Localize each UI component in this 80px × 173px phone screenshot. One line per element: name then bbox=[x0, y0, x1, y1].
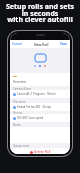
button[interactable]: Save bbox=[60, 42, 68, 46]
button[interactable]: Kodak Portra 400 · 36 exp bbox=[13, 103, 68, 111]
button[interactable]: Cancel bbox=[12, 42, 22, 46]
staticText: Cancel bbox=[12, 42, 22, 46]
staticText: Camera & lens bbox=[13, 87, 32, 91]
staticText: Shot at bbox=[13, 111, 22, 115]
staticText: New Roll bbox=[34, 42, 49, 47]
staticText: Save bbox=[60, 42, 68, 46]
staticText: Canon AE-1 Program · 50mm bbox=[17, 92, 56, 96]
staticText: Danger zone bbox=[13, 144, 30, 148]
staticText: ISO 400 · box speed bbox=[17, 116, 44, 120]
button[interactable]: Yosemite bbox=[10, 73, 70, 86]
staticText: Setup rolls and sets in seconds with cle… bbox=[6, 2, 74, 24]
button[interactable]: Canon AE-1 Program · 50mm bbox=[13, 90, 68, 98]
button[interactable]: Delete Roll bbox=[10, 148, 70, 154]
staticText: Kodak Portra 400 · 36 exp bbox=[17, 105, 52, 109]
staticText: Notes bbox=[13, 123, 21, 127]
staticText: Yosemite bbox=[13, 80, 27, 84]
staticText: Film stock bbox=[13, 100, 26, 104]
staticText: Delete Roll bbox=[34, 150, 51, 154]
button[interactable]: ISO 400 · box speed bbox=[13, 114, 68, 122]
